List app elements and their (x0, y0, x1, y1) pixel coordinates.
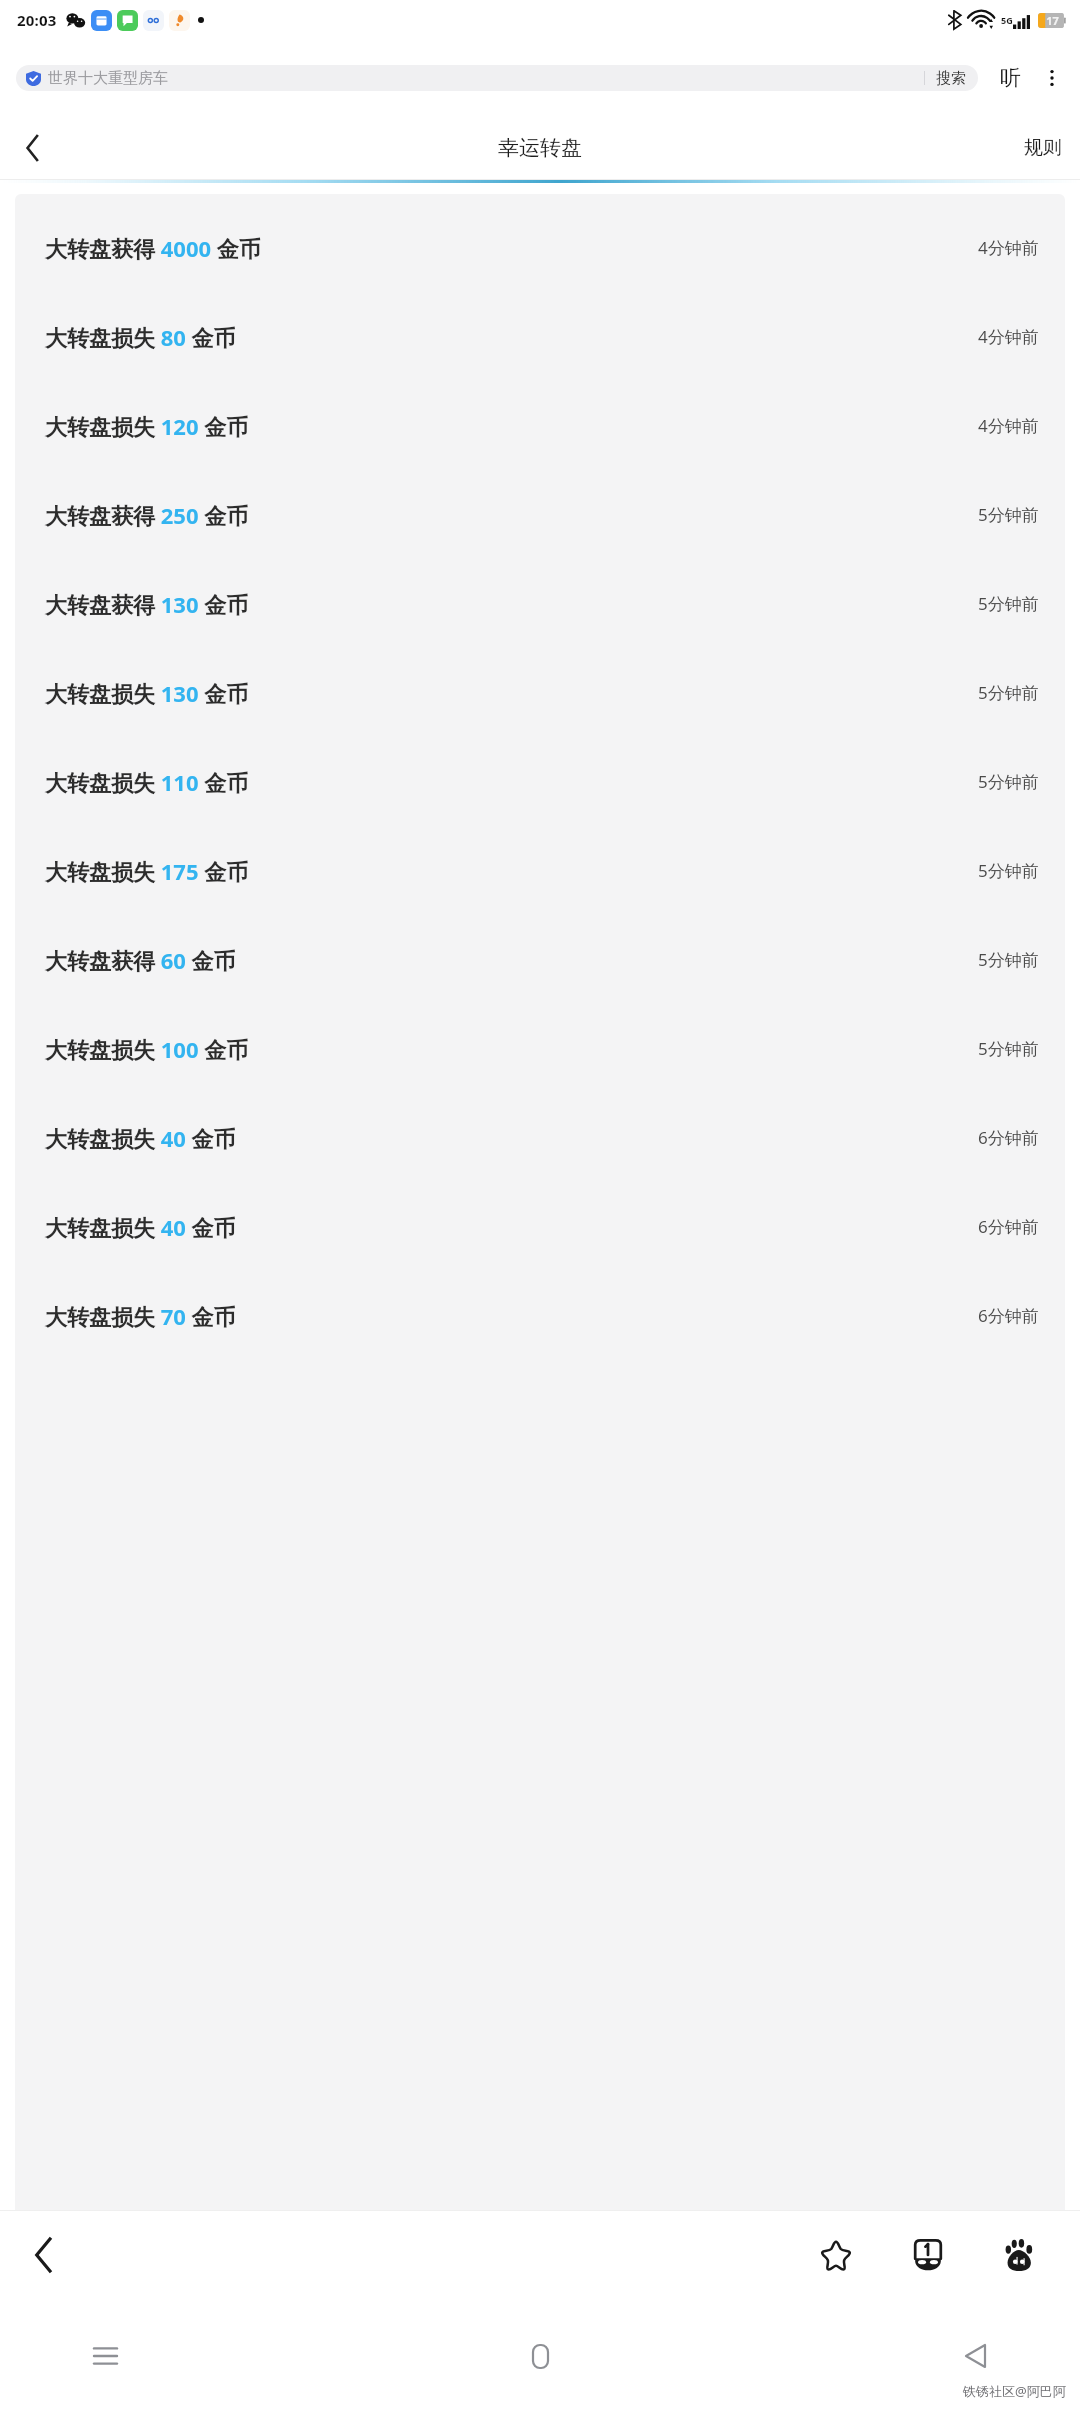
staticText: 大转盘损失 130 金币 (45, 678, 249, 708)
staticText: 17 (1046, 13, 1059, 28)
staticText: 规则 (1024, 136, 1062, 160)
staticText: 大转盘损失 80 金币 (45, 322, 236, 352)
staticText: 5分钟前 (978, 770, 1039, 793)
staticText: 5分钟前 (978, 503, 1039, 526)
staticText: 大转盘获得 250 金币 (45, 500, 249, 530)
staticText: 大转盘损失 70 金币 (45, 1301, 236, 1331)
staticText: 5分钟前 (978, 1037, 1039, 1060)
button[interactable]: 听 (988, 56, 1032, 100)
button[interactable]: Favorite (804, 2223, 868, 2287)
button[interactable]: 大转盘获得 250 金币 (15, 470, 1065, 559)
button[interactable]: 大转盘损失 100 金币 (15, 1004, 1065, 1093)
button[interactable]: 大转盘获得 4000 金币 (15, 203, 1065, 292)
button[interactable]: Tabs (896, 2223, 960, 2287)
staticText: 大转盘获得 4000 金币 (45, 233, 261, 263)
staticText: 幸运转盘 (498, 135, 582, 161)
staticText: 4分钟前 (978, 236, 1039, 259)
button[interactable]: Back (12, 2224, 74, 2286)
staticText: 大转盘损失 100 金币 (45, 1034, 249, 1064)
button[interactable]: 大转盘获得 60 金币 (15, 915, 1065, 1004)
staticText: 大转盘损失 110 金币 (45, 767, 249, 797)
staticText: 大转盘获得 130 金币 (45, 589, 249, 619)
staticText: 听 (1000, 65, 1021, 91)
button[interactable]: 大转盘损失 130 金币 (15, 648, 1065, 737)
button[interactable]: Home (505, 2321, 575, 2391)
button[interactable]: Recent apps (70, 2321, 140, 2391)
button[interactable]: 世界十大重型房车 (16, 65, 978, 91)
staticText: 5G (1001, 14, 1013, 26)
button[interactable]: 大转盘损失 40 金币 (15, 1093, 1065, 1182)
button[interactable]: 规则 (1006, 122, 1080, 174)
staticText: 6分钟前 (978, 1126, 1039, 1149)
staticText: 5分钟前 (978, 592, 1039, 615)
button[interactable]: Baidu home (988, 2223, 1052, 2287)
staticText: 5分钟前 (978, 948, 1039, 971)
button[interactable]: 大转盘损失 40 金币 (15, 1182, 1065, 1271)
staticText: 搜索 (936, 69, 966, 88)
staticText: 6分钟前 (978, 1215, 1039, 1238)
staticText: 5分钟前 (978, 681, 1039, 704)
staticText: 20:03 (17, 10, 57, 30)
button[interactable]: 大转盘损失 110 金币 (15, 737, 1065, 826)
button[interactable]: 大转盘损失 80 金币 (15, 292, 1065, 381)
button[interactable]: 大转盘损失 70 金币 (15, 1271, 1065, 1360)
staticText: 4分钟前 (978, 414, 1039, 437)
staticText: 6分钟前 (978, 1304, 1039, 1327)
button[interactable]: Back (6, 122, 58, 174)
button[interactable]: 大转盘损失 120 金币 (15, 381, 1065, 470)
button[interactable]: 大转盘损失 175 金币 (15, 826, 1065, 915)
button[interactable]: Back (940, 2321, 1010, 2391)
button[interactable]: More options (1032, 58, 1072, 98)
staticText: 4分钟前 (978, 325, 1039, 348)
staticText: 大转盘损失 120 金币 (45, 411, 249, 441)
staticText: 大转盘获得 60 金币 (45, 945, 236, 975)
button[interactable]: 大转盘获得 130 金币 (15, 559, 1065, 648)
staticText: 大转盘损失 175 金币 (45, 856, 249, 886)
staticText: 大转盘损失 40 金币 (45, 1123, 236, 1153)
staticText: 世界十大重型房车 (48, 69, 168, 88)
staticText: 5分钟前 (978, 859, 1039, 882)
staticText: 铁锈社区@阿巴阿 (963, 2382, 1066, 2400)
staticText: 大转盘损失 40 金币 (45, 1212, 236, 1242)
